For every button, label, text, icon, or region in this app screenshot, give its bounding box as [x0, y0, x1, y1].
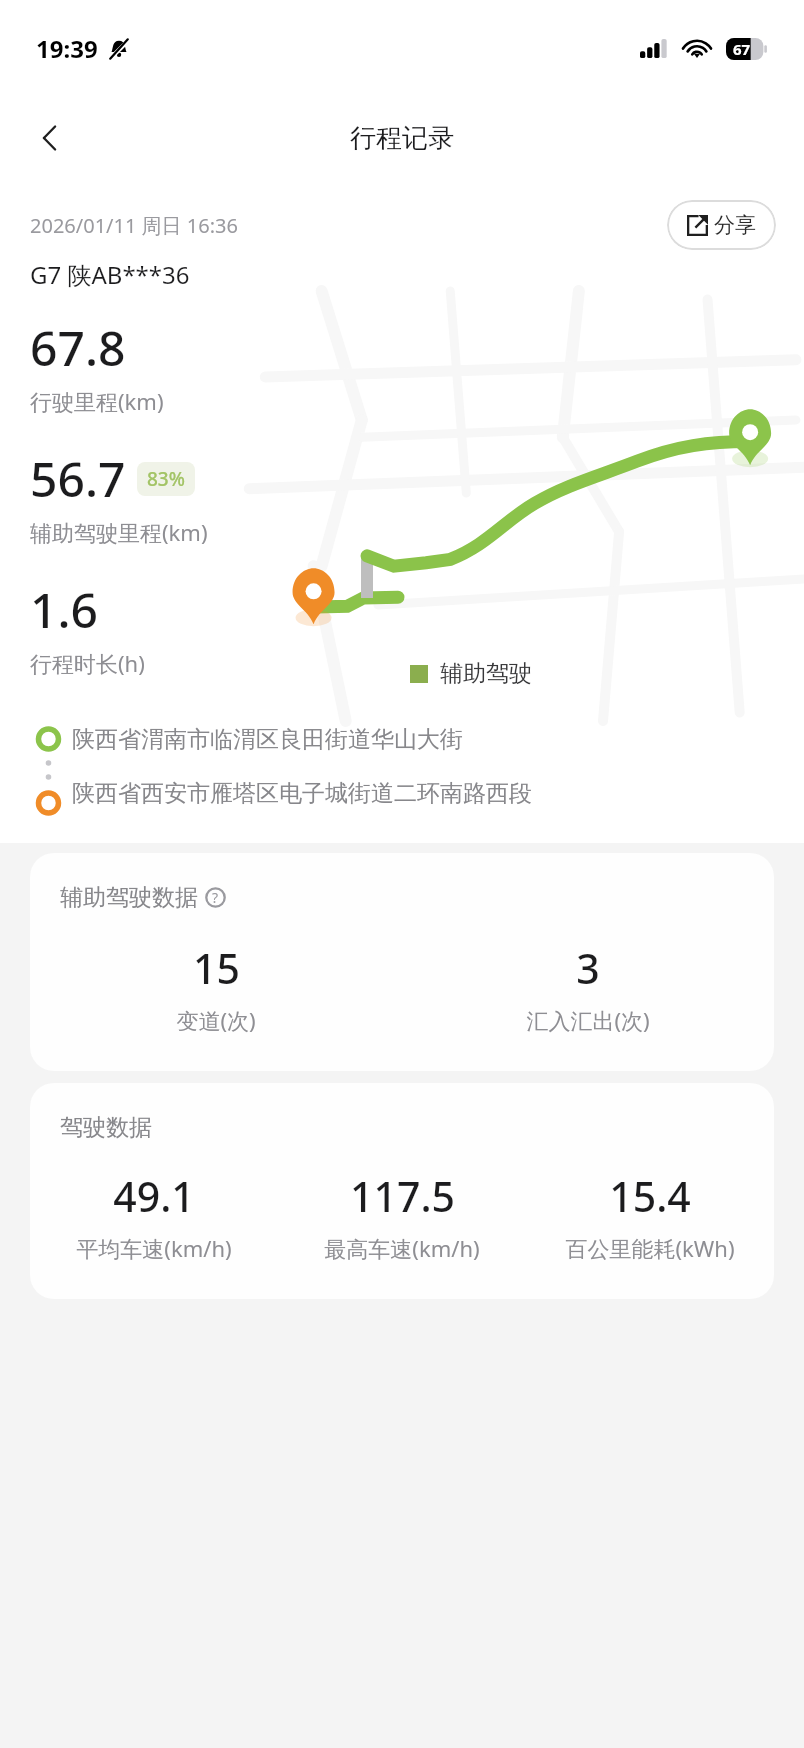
- button[interactable]: 辅助驾驶数据: [30, 853, 774, 1071]
- staticText: 56.7: [30, 446, 126, 511]
- staticText: 行驶里程(km): [30, 386, 164, 416]
- staticText: 117.5: [350, 1168, 455, 1224]
- staticText: 辅助驾驶数据: [60, 883, 198, 912]
- staticText: 平均车速(km/h): [76, 1233, 232, 1263]
- staticText: 百公里能耗(kWh): [565, 1233, 735, 1263]
- staticText: 辅助驾驶里程(km): [30, 517, 208, 547]
- staticText: 行程记录: [350, 122, 454, 155]
- staticText: 驾驶数据: [60, 1113, 152, 1142]
- staticText: 19:39: [36, 32, 98, 65]
- staticText: G7 陕AB***36: [30, 258, 190, 291]
- staticText: 变道(次): [176, 1005, 256, 1035]
- staticText: 2026/01/11 周日 16:36: [30, 212, 238, 239]
- staticText: 最高车速(km/h): [324, 1233, 480, 1263]
- button[interactable]: 分享: [667, 200, 776, 250]
- staticText: 1.6: [30, 577, 98, 642]
- staticText: 辅助驾驶: [440, 659, 532, 688]
- staticText: 15: [193, 940, 240, 996]
- staticText: 15.4: [609, 1168, 691, 1224]
- staticText: ?: [212, 888, 219, 907]
- staticText: 83%: [147, 466, 185, 492]
- staticText: 67.8: [30, 315, 126, 380]
- staticText: 3: [576, 940, 600, 996]
- staticText: 分享: [714, 212, 756, 238]
- staticText: 行程时长(h): [30, 648, 145, 678]
- staticText: 汇入汇出(次): [526, 1005, 650, 1035]
- staticText: 49.1: [113, 1168, 195, 1224]
- staticText: 陕西省渭南市临渭区良田街道华山大街: [72, 725, 463, 754]
- staticText: 67: [733, 39, 751, 59]
- button[interactable]: 驾驶数据: [30, 1083, 774, 1299]
- button[interactable]: Back: [20, 108, 80, 168]
- staticText: 陕西省西安市雁塔区电子城街道二环南路西段: [72, 779, 532, 808]
